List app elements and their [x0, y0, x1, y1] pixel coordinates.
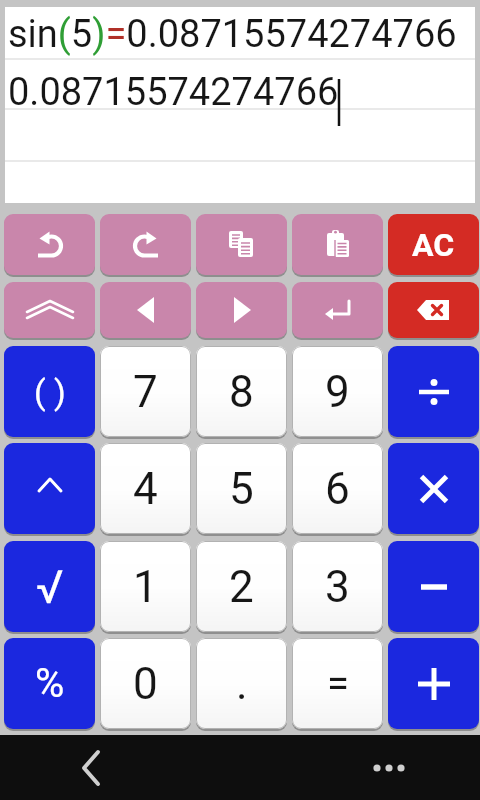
button[interactable]: [100, 282, 191, 338]
button[interactable]: [388, 443, 479, 534]
button[interactable]: [388, 346, 479, 437]
button[interactable]: [60, 737, 122, 799]
staticText: 2: [229, 561, 254, 613]
button[interactable]: 9: [292, 346, 383, 437]
staticText: ( ): [34, 372, 66, 412]
button[interactable]: [292, 282, 383, 338]
button[interactable]: [358, 737, 420, 799]
staticText: 0.08715574274766: [8, 70, 339, 115]
button[interactable]: AC: [388, 214, 479, 275]
button[interactable]: [196, 282, 287, 338]
staticText: %: [35, 660, 65, 707]
button[interactable]: [4, 443, 95, 534]
button[interactable]: [388, 282, 479, 338]
button[interactable]: 1: [100, 541, 191, 632]
button[interactable]: [292, 214, 383, 275]
button[interactable]: √: [4, 541, 95, 632]
button[interactable]: 6: [292, 443, 383, 534]
staticText: 8: [229, 366, 254, 418]
button[interactable]: [388, 541, 479, 632]
button[interactable]: .: [196, 638, 287, 729]
button[interactable]: 2: [196, 541, 287, 632]
button[interactable]: 4: [100, 443, 191, 534]
button[interactable]: 7: [100, 346, 191, 437]
button[interactable]: 5: [196, 443, 287, 534]
button[interactable]: 0: [100, 638, 191, 729]
staticText: 3: [325, 561, 350, 613]
button[interactable]: =: [292, 638, 383, 729]
button[interactable]: [4, 214, 95, 275]
staticText: AC: [412, 226, 455, 264]
button[interactable]: [196, 214, 287, 275]
button[interactable]: ( ): [4, 346, 95, 437]
staticText: 7: [133, 366, 158, 418]
button[interactable]: [4, 282, 95, 338]
staticText: 9: [325, 366, 350, 418]
staticText: sin(5)=0.08715574274766: [8, 12, 457, 57]
staticText: 4: [133, 463, 158, 515]
staticText: 5: [229, 463, 254, 515]
staticText: √: [36, 560, 64, 614]
button[interactable]: sin(5)=0.08715574274766: [5, 7, 475, 203]
staticText: .: [236, 658, 248, 710]
staticText: 6: [325, 463, 350, 515]
staticText: =: [327, 660, 349, 707]
button[interactable]: [388, 638, 479, 729]
button[interactable]: 3: [292, 541, 383, 632]
button[interactable]: [100, 214, 191, 275]
button[interactable]: 8: [196, 346, 287, 437]
staticText: 0: [133, 658, 158, 710]
staticText: 1: [133, 561, 158, 613]
button[interactable]: %: [4, 638, 95, 729]
